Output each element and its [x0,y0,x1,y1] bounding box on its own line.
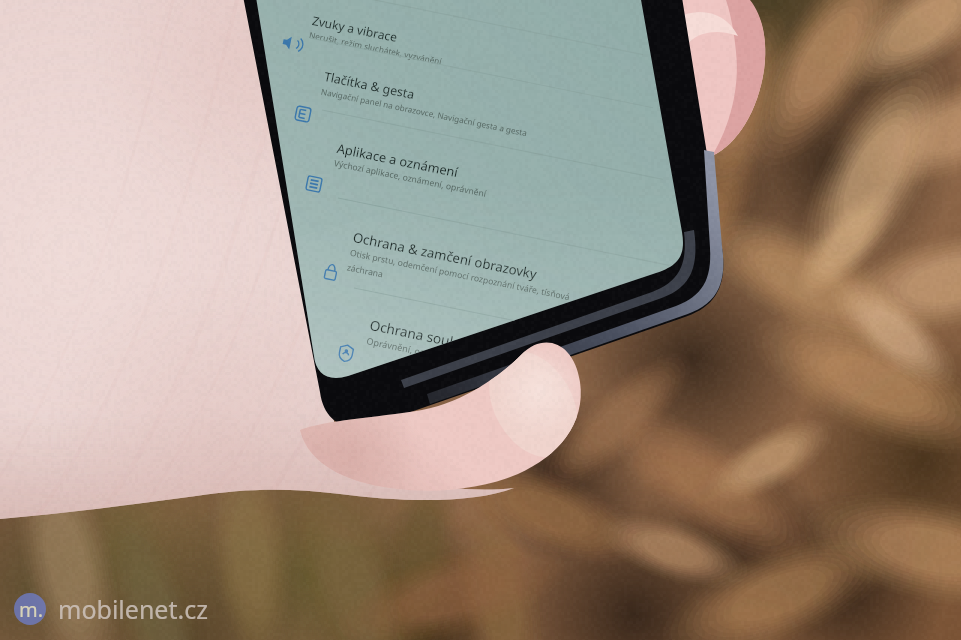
button[interactable] [0,0,961,640]
